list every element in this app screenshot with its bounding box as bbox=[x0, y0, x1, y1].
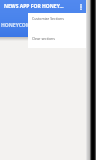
staticText: HONEYCOMB bbox=[1, 22, 34, 29]
button[interactable]: HONEYCOMB bbox=[1, 19, 35, 31]
staticText: Clear sections bbox=[32, 36, 55, 41]
button[interactable]: Clear sections bbox=[28, 31, 86, 48]
button[interactable]: More options bbox=[76, 2, 86, 12]
button[interactable]: Customize Sections bbox=[28, 13, 86, 30]
staticText: Customize Sections bbox=[32, 16, 64, 21]
staticText: NEWS APP FOR HONEY... bbox=[4, 3, 64, 10]
